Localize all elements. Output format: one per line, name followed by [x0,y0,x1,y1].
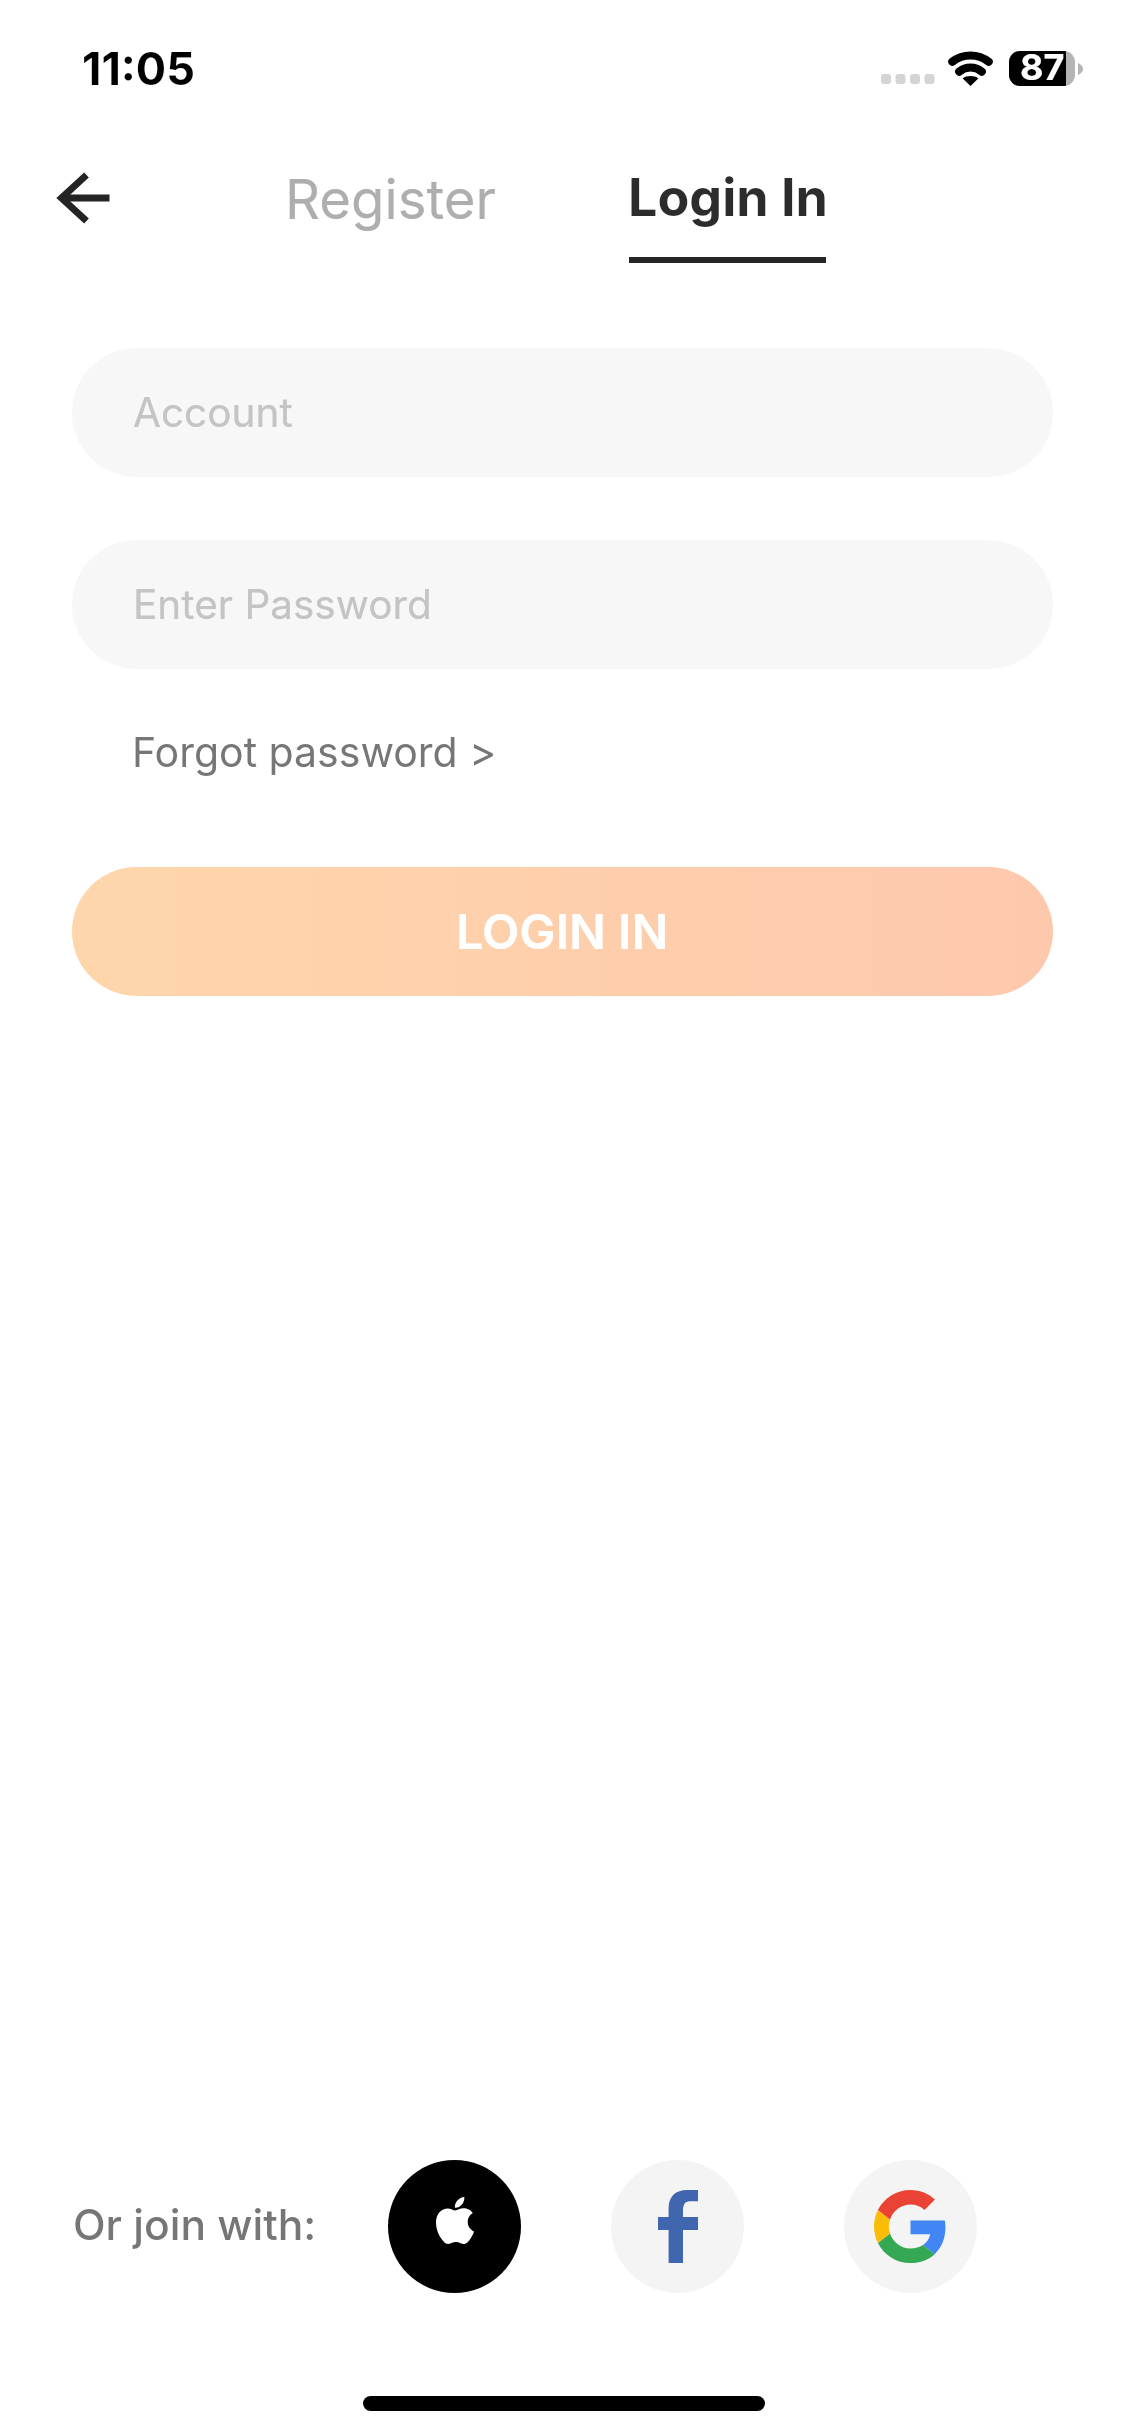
button[interactable]: Forgot password > [118,717,511,787]
button[interactable]: Sign in with Facebook [611,2160,744,2293]
button[interactable]: Login In [604,148,850,273]
staticText: 11:05 [82,41,195,95]
staticText: Or join with: [73,2199,317,2250]
staticText: Enter Password [133,580,432,629]
staticText: Forgot password > [132,727,497,777]
button[interactable]: Back [34,170,132,226]
button[interactable]: Enter Password [72,540,1053,669]
button[interactable]: Sign in with Apple [388,2160,521,2293]
staticText: Account [133,388,293,437]
button[interactable]: Sign in with Google [844,2160,977,2293]
staticText: Register [285,166,497,232]
button[interactable]: Register [261,148,521,250]
button[interactable]: Account [72,348,1053,477]
staticText: 87 [1020,45,1065,89]
staticText: Login In [628,166,826,229]
button[interactable]: LOGIN IN [72,867,1053,996]
staticText: LOGIN IN [456,902,669,961]
